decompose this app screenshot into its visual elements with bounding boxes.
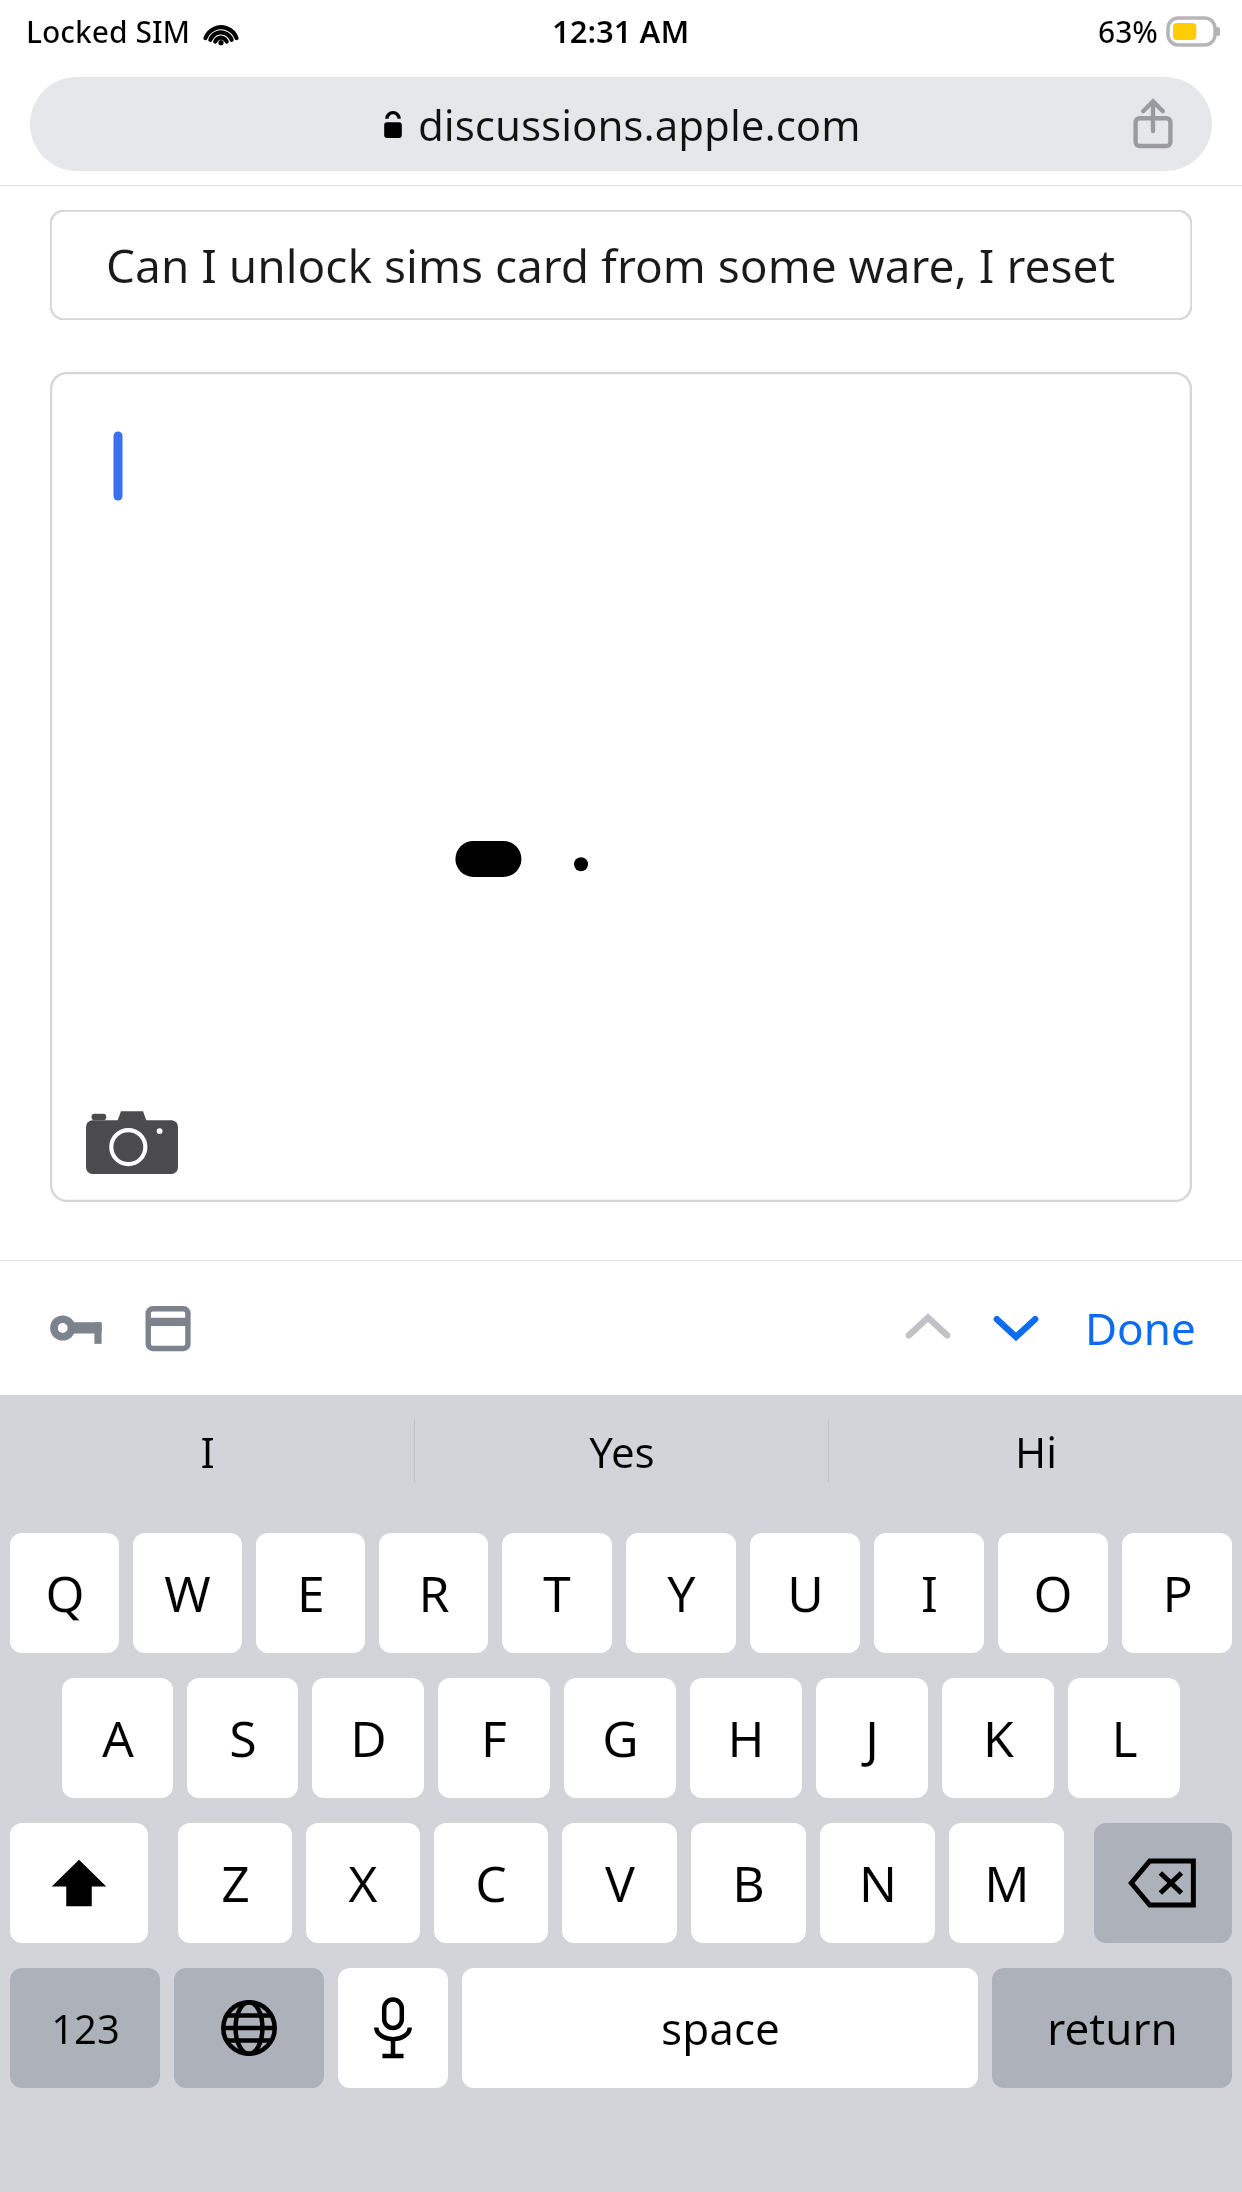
button[interactable]: Q [10, 1533, 119, 1653]
button[interactable]: return [992, 1968, 1232, 2088]
staticText: X [348, 1849, 378, 1917]
staticText: E [297, 1559, 325, 1627]
button[interactable]: I [874, 1533, 984, 1653]
button[interactable]: D [312, 1678, 424, 1798]
button[interactable]: Backspace [1094, 1823, 1232, 1943]
button[interactable]: N [820, 1823, 935, 1943]
button[interactable]: Shift [10, 1823, 148, 1943]
button[interactable]: P [1122, 1533, 1232, 1653]
button[interactable]: C [434, 1823, 548, 1943]
button[interactable]: I [0, 1395, 414, 1507]
button[interactable]: O [998, 1533, 1108, 1653]
button[interactable]: Can I unlock sims card from some ware, I… [50, 210, 1192, 320]
staticText: Locked SIM [26, 11, 191, 52]
staticText: O [1033, 1559, 1073, 1627]
staticText: Z [221, 1849, 250, 1917]
staticText: P [1162, 1559, 1193, 1627]
staticText: W [164, 1559, 211, 1627]
button[interactable]: M [949, 1823, 1064, 1943]
staticText: J [865, 1704, 879, 1772]
staticText: T [543, 1559, 571, 1627]
staticText: Hi [1015, 1423, 1057, 1480]
button[interactable]: W [133, 1533, 242, 1653]
button[interactable]: K [942, 1678, 1054, 1798]
button[interactable]: Previous field [891, 1291, 965, 1365]
staticText: M [984, 1849, 1030, 1917]
button[interactable]: U [750, 1533, 860, 1653]
staticText: discussions.apple.com [418, 96, 861, 153]
staticText: L [1111, 1704, 1138, 1772]
button[interactable]: Switch keyboard [174, 1968, 324, 2088]
staticText: 63% [1098, 11, 1158, 52]
staticText: U [787, 1559, 824, 1627]
button[interactable]: J [816, 1678, 928, 1798]
staticText: B [732, 1849, 765, 1917]
staticText: S [229, 1704, 257, 1772]
button[interactable]: space [462, 1968, 978, 2088]
button[interactable]: Z [178, 1823, 292, 1943]
staticText: space [661, 1998, 780, 2058]
button[interactable]: Done [1079, 1288, 1202, 1368]
staticText: return [1047, 1998, 1178, 2058]
staticText: D [350, 1704, 387, 1772]
staticText: K [983, 1704, 1014, 1772]
button[interactable]: Yes [415, 1395, 828, 1507]
button[interactable]: discussions.apple.com [30, 77, 1212, 171]
button[interactable] [50, 372, 1192, 1202]
staticText: 123 [51, 2001, 120, 2055]
button[interactable]: Dictation [338, 1968, 448, 2088]
button[interactable]: G [564, 1678, 676, 1798]
staticText: N [859, 1849, 897, 1917]
button[interactable]: Passwords [44, 1292, 116, 1364]
button[interactable]: Share [1124, 95, 1182, 153]
staticText: Done [1085, 1298, 1196, 1358]
button[interactable]: R [379, 1533, 488, 1653]
staticText: C [475, 1849, 507, 1917]
button[interactable]: F [438, 1678, 550, 1798]
staticText: F [481, 1704, 507, 1772]
staticText: V [605, 1849, 635, 1917]
button[interactable]: V [562, 1823, 677, 1943]
button[interactable]: T [502, 1533, 612, 1653]
button[interactable]: 123 [10, 1968, 160, 2088]
staticText: Y [667, 1559, 696, 1627]
staticText: I [200, 1423, 215, 1480]
button[interactable]: A [62, 1678, 173, 1798]
staticText: G [602, 1704, 639, 1772]
button[interactable]: H [690, 1678, 802, 1798]
button[interactable]: S [187, 1678, 298, 1798]
button[interactable]: Credit card autofill [138, 1296, 202, 1360]
button[interactable]: Next field [979, 1291, 1053, 1365]
button[interactable]: Hi [829, 1395, 1242, 1507]
button[interactable]: X [306, 1823, 420, 1943]
staticText: A [102, 1704, 134, 1772]
button[interactable]: B [691, 1823, 806, 1943]
staticText: H [727, 1704, 765, 1772]
button[interactable]: Y [626, 1533, 736, 1653]
staticText: I [921, 1559, 938, 1627]
staticText: Yes [589, 1423, 655, 1480]
staticText: Q [45, 1559, 85, 1627]
button[interactable]: L [1068, 1678, 1180, 1798]
staticText: R [418, 1559, 450, 1627]
button[interactable]: E [256, 1533, 365, 1653]
staticText: Can I unlock sims card from some ware, I… [106, 234, 1127, 297]
staticText: 12:31 AM [552, 10, 690, 52]
